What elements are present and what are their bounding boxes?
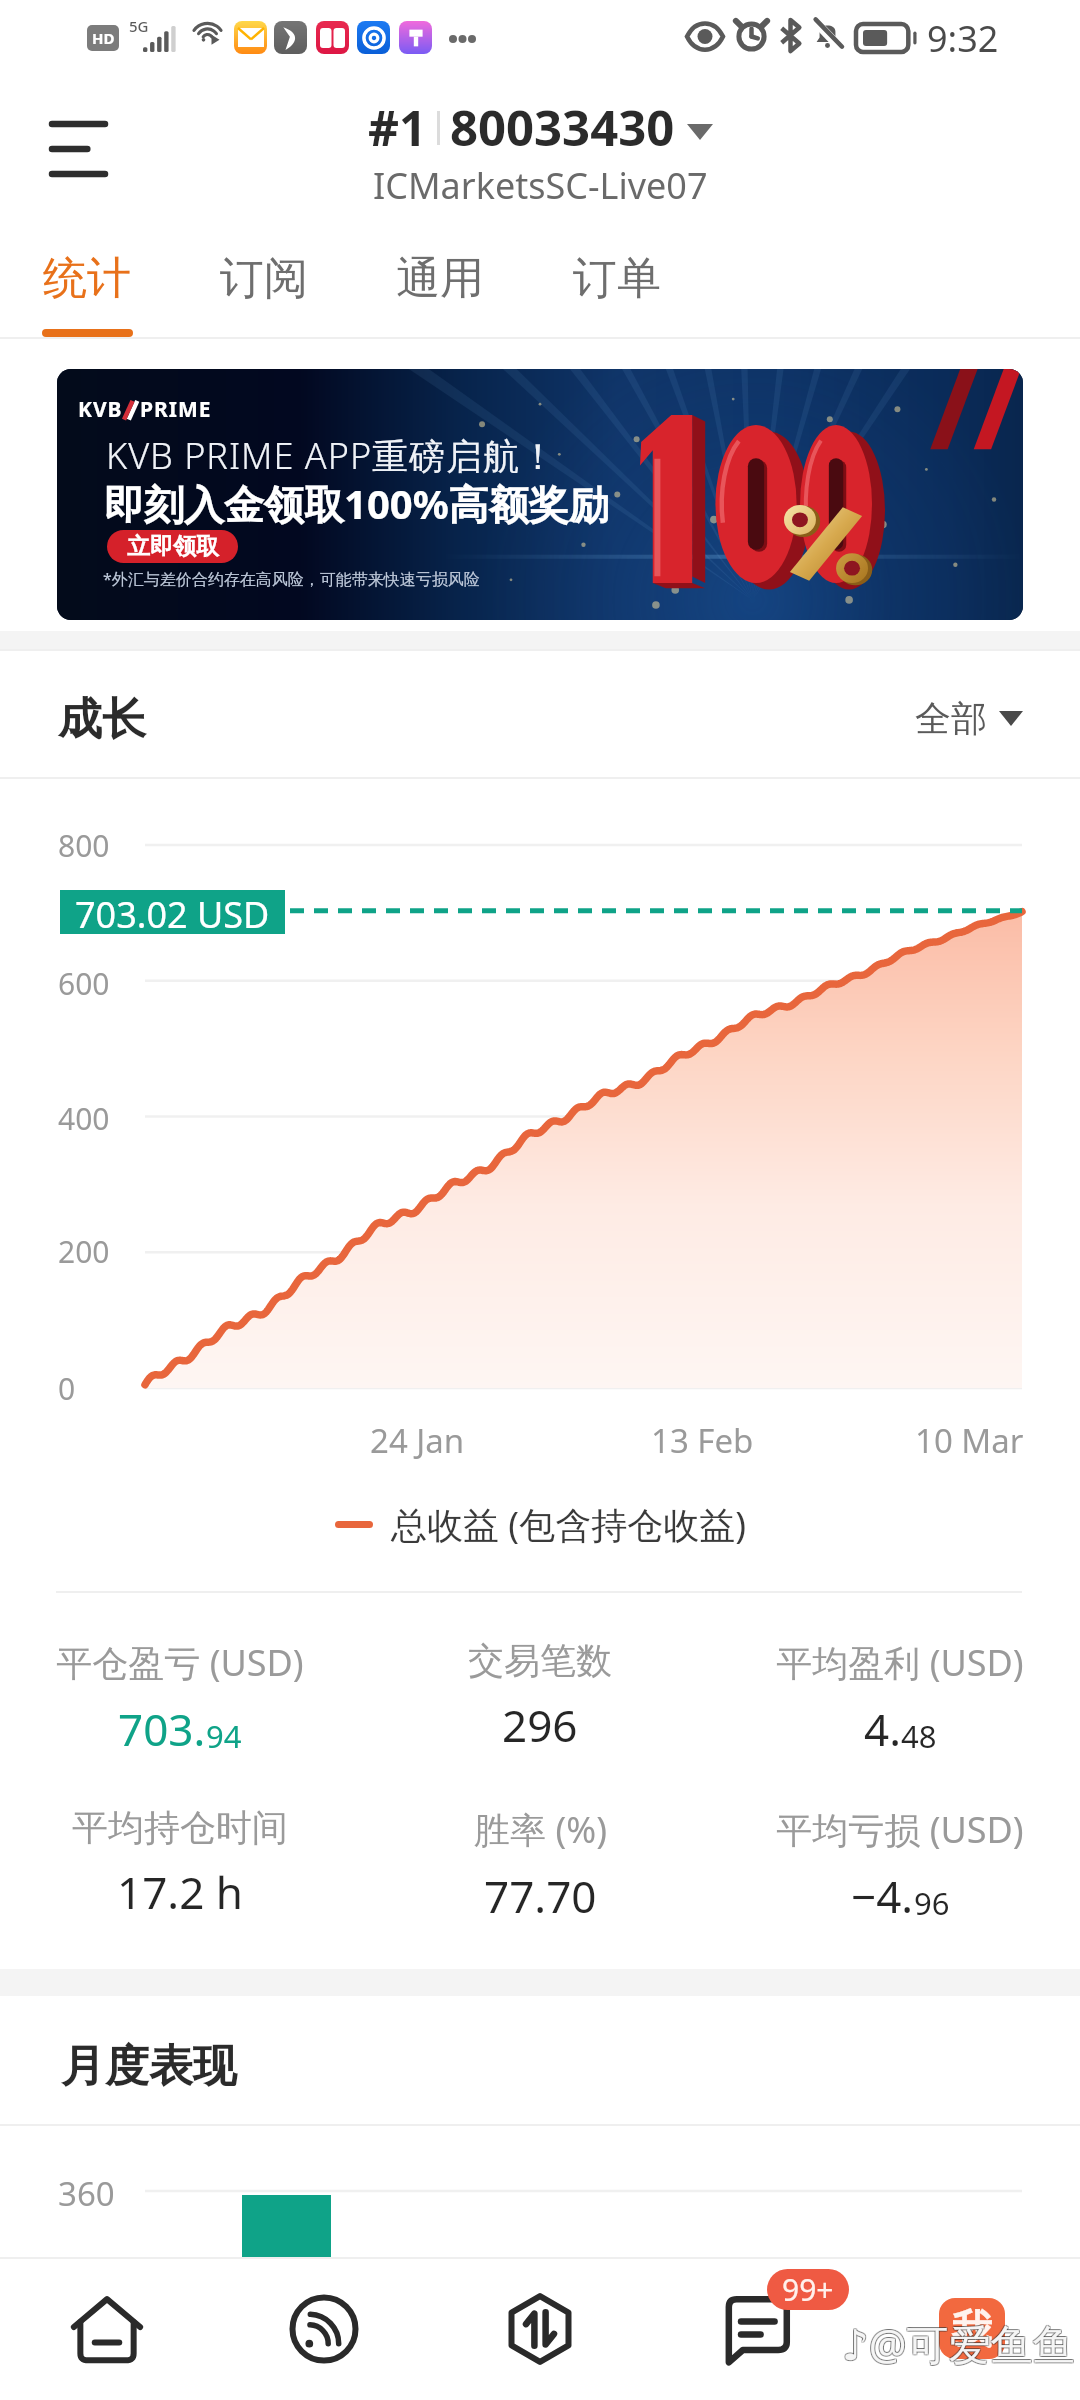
staticText: 96	[914, 1882, 950, 1924]
staticText: 平均持仓时间	[72, 1805, 288, 1850]
staticText: 200	[58, 1231, 110, 1272]
staticText: 80033430	[450, 94, 675, 161]
staticText: HD	[92, 28, 115, 48]
staticText: 通用	[396, 251, 484, 306]
staticText: 9:32	[927, 14, 999, 63]
button[interactable]: Menu	[28, 104, 128, 194]
staticText: ♪@可爱鱼鱼	[842, 2316, 1075, 2373]
staticText: 600	[58, 963, 110, 1004]
staticText: 94	[206, 1715, 242, 1757]
staticText: 703.	[118, 1699, 206, 1759]
staticText: 平均盈利 (USD)	[776, 1638, 1024, 1687]
staticText: 296	[502, 1695, 578, 1755]
staticText: ♪@可爱鱼鱼	[842, 2315, 1075, 2372]
staticText: 总收益 (包含持仓收益)	[391, 1500, 746, 1549]
staticText: ♪@可爱鱼鱼	[843, 2315, 1076, 2372]
button[interactable]: 全部	[915, 696, 1023, 741]
button[interactable]: 订阅	[176, 235, 352, 339]
staticText: 5G	[129, 16, 149, 36]
staticText: ♪@可爱鱼鱼	[841, 2314, 1074, 2371]
staticText: 17.2 h	[117, 1862, 243, 1922]
button[interactable]: 通用	[352, 235, 528, 339]
staticText: 10 Mar	[915, 1418, 1024, 1463]
button[interactable]: Home	[0, 2257, 215, 2400]
staticText: 平均亏损 (USD)	[776, 1805, 1024, 1854]
staticText: KVB	[78, 395, 123, 424]
staticText: 360	[58, 2171, 115, 2216]
staticText: 全部	[915, 696, 987, 741]
staticText: 统计	[43, 251, 131, 306]
staticText: 24 Jan	[370, 1418, 465, 1463]
staticText: *外汇与差价合约存在高风险，可能带来快速亏损风险	[103, 568, 480, 590]
staticText: 成长	[58, 692, 146, 747]
staticText: 订阅	[220, 251, 308, 306]
staticText: 我	[952, 2304, 992, 2354]
staticText: 48	[901, 1715, 937, 1757]
button[interactable]: Profile	[864, 2257, 1080, 2400]
staticText: 0	[58, 1368, 76, 1409]
staticText: 即刻入金领取100%高额奖励	[104, 476, 609, 531]
button[interactable]: 立即领取	[107, 530, 238, 563]
staticText: KVB PRIME APP重磅启航！	[106, 431, 558, 480]
staticText: 800	[58, 825, 110, 866]
staticText: PRIME	[140, 395, 212, 424]
button[interactable]: Messages	[648, 2257, 864, 2400]
staticText: 订单	[573, 251, 661, 306]
staticText: ♪@可爱鱼鱼	[841, 2316, 1074, 2373]
button[interactable]: #1	[368, 94, 713, 210]
staticText: #1	[368, 95, 427, 160]
button[interactable]: KVB	[57, 369, 1023, 620]
staticText: 703.02 USD	[75, 890, 270, 934]
staticText: ♪@可爱鱼鱼	[841, 2315, 1074, 2372]
button[interactable]: Signals	[216, 2257, 432, 2400]
staticText: 交易笔数	[468, 1638, 612, 1683]
staticText: 13 Feb	[651, 1418, 754, 1463]
staticText: −4.	[851, 1866, 914, 1926]
button[interactable]: Trade	[432, 2257, 648, 2400]
staticText: ♪@可爱鱼鱼	[842, 2314, 1075, 2371]
staticText: 立即领取	[127, 532, 219, 561]
staticText: 99+	[782, 2269, 834, 2310]
button[interactable]: 订单	[529, 235, 705, 339]
staticText: 77.70	[484, 1866, 597, 1926]
staticText: ♪@可爱鱼鱼	[843, 2316, 1076, 2373]
staticText: 400	[58, 1098, 110, 1139]
button[interactable]: 统计	[0, 235, 175, 339]
staticText: ICMarketsSC-Live07	[373, 161, 708, 210]
staticText: 平仓盈亏 (USD)	[56, 1638, 304, 1687]
staticText: ♪@可爱鱼鱼	[843, 2314, 1076, 2371]
staticText: 月度表现	[61, 2039, 237, 2094]
staticText: 4.	[864, 1699, 901, 1759]
staticText: 胜率 (%)	[474, 1805, 607, 1854]
